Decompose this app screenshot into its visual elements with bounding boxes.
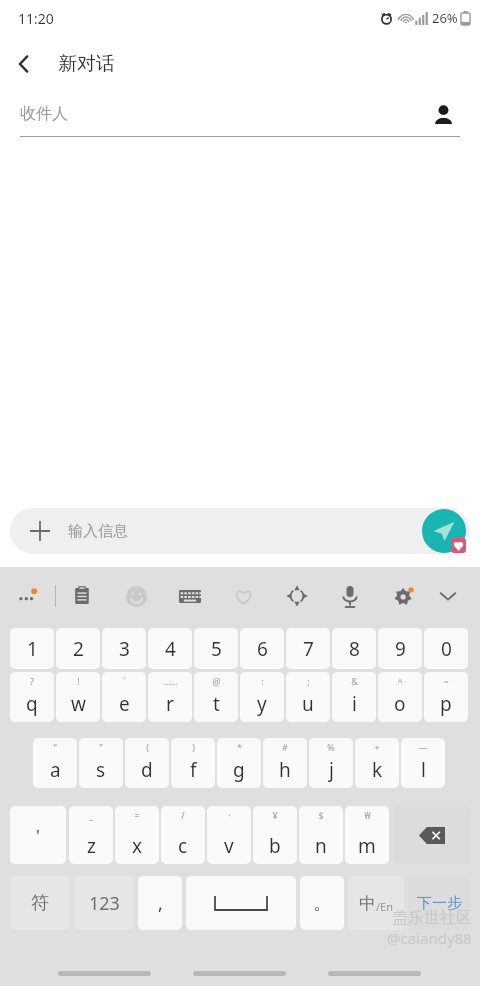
staticText: n xyxy=(315,833,327,859)
button[interactable]: @ xyxy=(194,672,238,722)
button[interactable]: ₩ xyxy=(345,806,389,864)
button[interactable]: ; xyxy=(286,672,330,722)
button[interactable]: = xyxy=(115,806,159,864)
staticText: “ xyxy=(53,741,57,753)
staticText: u xyxy=(302,691,314,717)
staticText: @caiandy88 xyxy=(387,928,472,948)
button[interactable]: Home xyxy=(193,971,286,976)
button[interactable]: 下一步 xyxy=(408,876,470,930)
staticText: h xyxy=(279,757,291,783)
staticText: b xyxy=(269,833,281,859)
button[interactable]: 输入信息 xyxy=(10,508,470,554)
button[interactable]: 3 xyxy=(102,628,146,669)
staticText: o xyxy=(394,691,406,717)
button[interactable]: Keyboard tool xyxy=(429,577,467,615)
staticText: 4 xyxy=(165,636,176,662)
staticText: ~ xyxy=(443,675,449,687)
button[interactable]: ~ xyxy=(424,672,468,722)
button[interactable]: 0 xyxy=(424,628,468,669)
button[interactable]: Keyboard tool xyxy=(171,577,209,615)
staticText: 输入信息 xyxy=(68,522,128,541)
button[interactable]: # xyxy=(263,738,307,788)
button[interactable]: Backspace xyxy=(393,806,470,864)
button[interactable]: More options xyxy=(10,578,46,614)
button[interactable]: ” xyxy=(79,738,123,788)
button[interactable]: 8 xyxy=(332,628,376,669)
staticText: 下一步 xyxy=(417,894,462,913)
button[interactable]: 符 xyxy=(10,876,70,930)
button[interactable]: ¥ xyxy=(253,806,297,864)
button[interactable]: 6 xyxy=(240,628,284,669)
button[interactable]: / xyxy=(161,806,205,864)
staticText: ' xyxy=(36,824,40,847)
button[interactable]: — xyxy=(401,738,445,788)
staticText: 8 xyxy=(349,636,360,662)
button[interactable]: Keyboard tool xyxy=(63,577,101,615)
staticText: ( xyxy=(146,741,149,753)
staticText: $ xyxy=(318,809,324,821)
button[interactable]: 9 xyxy=(378,628,422,669)
staticText: 6 xyxy=(257,636,268,662)
staticText: a xyxy=(50,757,61,783)
staticText: z xyxy=(87,833,96,859)
staticText: # xyxy=(282,741,288,753)
staticText: f xyxy=(190,757,197,783)
button[interactable]: $ xyxy=(299,806,343,864)
button[interactable]: ) xyxy=(171,738,215,788)
staticText: x xyxy=(132,833,143,859)
staticText: y xyxy=(257,691,267,717)
button[interactable]: · xyxy=(207,806,251,864)
button[interactable]: 7 xyxy=(286,628,330,669)
staticText: v xyxy=(224,833,234,859)
button[interactable]: : xyxy=(240,672,284,722)
button[interactable]: …… xyxy=(148,672,192,722)
staticText: p xyxy=(440,691,452,717)
button[interactable]: ^ xyxy=(378,672,422,722)
staticText: 7 xyxy=(303,636,314,662)
button[interactable]: * xyxy=(217,738,261,788)
staticText: 。 xyxy=(313,892,331,915)
button[interactable]: Keyboard tool xyxy=(224,577,262,615)
button[interactable]: Space xyxy=(186,876,296,930)
staticText: /En xyxy=(376,899,394,914)
button[interactable]: Send xyxy=(422,509,466,553)
staticText: 盖乐世社区 xyxy=(392,908,472,928)
button[interactable]: Back xyxy=(328,971,421,976)
button[interactable]: 5 xyxy=(194,628,238,669)
button[interactable]: ? xyxy=(10,672,54,722)
staticText: ? xyxy=(30,675,34,687)
button[interactable]: ! xyxy=(56,672,100,722)
button[interactable]: & xyxy=(332,672,376,722)
button[interactable]: “ xyxy=(33,738,77,788)
button[interactable]: Keyboard tool xyxy=(331,577,369,615)
staticText: 123 xyxy=(89,891,120,916)
button[interactable]: 123 xyxy=(74,876,134,930)
staticText: 2 xyxy=(73,636,84,662)
button[interactable]: 1 xyxy=(10,628,54,669)
staticText: ^ xyxy=(397,675,403,687)
button[interactable]: 4 xyxy=(148,628,192,669)
button[interactable]: _ xyxy=(69,806,113,864)
staticText: i xyxy=(352,691,357,717)
button[interactable]: Choose contact xyxy=(426,97,460,131)
button[interactable]: + xyxy=(355,738,399,788)
staticText: 收件人 xyxy=(20,104,426,124)
button[interactable]: ' xyxy=(10,806,66,864)
staticText: m xyxy=(358,833,376,859)
button[interactable]: Keyboard tool xyxy=(278,577,316,615)
staticText: s xyxy=(96,757,106,783)
button[interactable]: , xyxy=(138,876,182,930)
button[interactable]: Recents xyxy=(58,971,151,976)
button[interactable]: 中 xyxy=(348,876,404,930)
button[interactable]: ` xyxy=(102,672,146,722)
button[interactable]: 2 xyxy=(56,628,100,669)
button[interactable]: % xyxy=(309,738,353,788)
staticText: l xyxy=(421,757,426,783)
button[interactable]: ( xyxy=(125,738,169,788)
button[interactable]: Keyboard tool xyxy=(117,577,155,615)
staticText: & xyxy=(351,675,358,687)
button[interactable]: Back xyxy=(0,40,48,88)
staticText: ; xyxy=(307,675,310,687)
button[interactable]: 。 xyxy=(300,876,344,930)
button[interactable]: Keyboard tool xyxy=(385,577,423,615)
